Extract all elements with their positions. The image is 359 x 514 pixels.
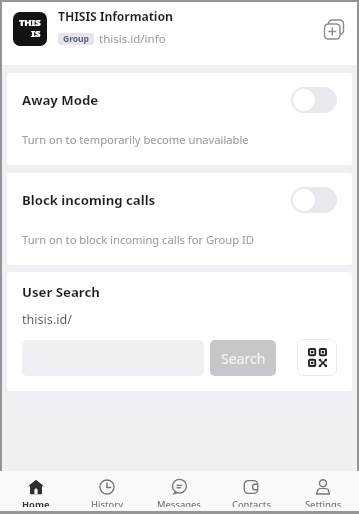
button[interactable]: Messages: [143, 471, 215, 511]
staticText: Group: [63, 33, 89, 45]
staticText: User Search: [22, 283, 100, 301]
staticText: Contacts: [232, 498, 271, 507]
staticText: Away Mode: [22, 91, 99, 109]
staticText: History: [91, 498, 124, 507]
staticText: Turn on to temporarily become unavailabl…: [22, 132, 249, 147]
staticText: Turn on to block incoming calls for Grou…: [22, 232, 254, 247]
staticText: thisis.id/: [22, 311, 72, 328]
staticText: Search: [221, 349, 266, 368]
button[interactable]: Block incoming calls: [291, 187, 337, 213]
staticText: Block incoming calls: [22, 191, 156, 209]
staticText: Settings: [305, 498, 342, 507]
staticText: IS: [31, 27, 41, 40]
staticText: THIS: [19, 16, 41, 29]
button[interactable]: Settings: [287, 471, 359, 511]
button[interactable]: Search: [210, 340, 276, 376]
button[interactable]: Away Mode: [291, 87, 337, 113]
button[interactable]: History: [71, 471, 143, 511]
staticText: Home: [22, 498, 50, 507]
staticText: thisis.id/info: [99, 31, 166, 47]
button[interactable]: Home: [0, 471, 71, 511]
staticText: THISIS Information: [58, 8, 173, 25]
staticText: Messages: [157, 498, 201, 507]
button[interactable]: Scan QR code: [297, 339, 337, 376]
button[interactable]: Add: [320, 15, 348, 43]
button[interactable]: Contacts: [215, 471, 287, 511]
